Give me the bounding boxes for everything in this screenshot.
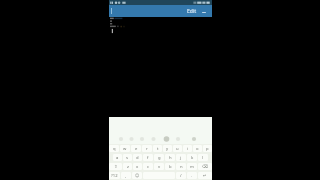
button[interactable]: x	[133, 163, 142, 170]
button[interactable]: s	[123, 154, 132, 161]
button[interactable]: r	[142, 145, 152, 152]
staticText: c	[147, 164, 150, 170]
staticText: n	[180, 164, 183, 170]
button[interactable]: v	[154, 163, 164, 170]
button[interactable]: d	[133, 154, 142, 161]
button[interactable]: k	[187, 154, 197, 161]
staticText: t	[157, 146, 159, 152]
button[interactable]: Undo	[109, 135, 123, 144]
button[interactable]: f	[143, 154, 153, 161]
staticText: d	[136, 155, 139, 161]
button[interactable]: ⇧	[109, 163, 122, 170]
button[interactable]: h	[165, 154, 175, 161]
staticText: s	[126, 155, 129, 161]
button[interactable]: q	[109, 145, 119, 152]
staticText: ⌫	[202, 164, 208, 169]
button[interactable]: Edit	[186, 6, 198, 17]
staticText: k	[191, 155, 194, 161]
button[interactable]: ?12	[109, 172, 120, 179]
staticText: o	[196, 146, 199, 152]
button[interactable]: t	[153, 145, 162, 152]
staticText: q	[113, 146, 116, 152]
button[interactable]: e	[131, 145, 141, 152]
staticText: /	[180, 173, 182, 179]
staticText: z	[127, 164, 129, 170]
staticText: j	[180, 155, 182, 161]
staticText: ⇧	[114, 164, 118, 169]
staticText: u	[176, 146, 179, 152]
staticText: ?12	[111, 173, 118, 179]
button[interactable]: Tab	[137, 135, 152, 144]
button[interactable]: ,	[121, 172, 131, 179]
staticText: b	[169, 164, 172, 170]
button[interactable]: y	[163, 145, 172, 152]
button[interactable]: n	[176, 163, 186, 170]
button[interactable]: More options	[201, 8, 207, 16]
button[interactable]: j	[176, 154, 186, 161]
button[interactable]: z	[123, 163, 132, 170]
staticText: f	[147, 155, 149, 161]
staticText: ,	[125, 173, 127, 179]
staticText: g	[158, 155, 161, 161]
staticText: .	[191, 173, 193, 179]
staticText: p	[206, 146, 209, 152]
staticText: w	[123, 146, 127, 152]
staticText: a	[116, 155, 119, 161]
staticText: Edit	[187, 8, 197, 15]
staticText: l	[202, 155, 204, 161]
staticText: m	[190, 164, 194, 170]
button[interactable]: .	[187, 172, 197, 179]
button[interactable]: c	[143, 163, 153, 170]
button[interactable]: o	[193, 145, 202, 152]
button[interactable]: ☺	[132, 172, 142, 179]
staticText: ☺	[135, 173, 140, 178]
button[interactable]: ⌫	[198, 163, 212, 170]
button[interactable]: l	[198, 154, 208, 161]
button[interactable]: /	[176, 172, 186, 179]
button[interactable]: p	[203, 145, 212, 152]
button[interactable]: a	[113, 154, 122, 161]
button[interactable]: Search	[152, 135, 167, 144]
staticText: r	[146, 146, 148, 152]
staticText: y	[166, 146, 169, 152]
staticText: ↵	[203, 173, 207, 178]
staticText: x	[136, 164, 139, 170]
button[interactable]: Redo	[123, 135, 137, 144]
button[interactable]: b	[165, 163, 175, 170]
staticText: h	[169, 155, 172, 161]
button[interactable]: m	[187, 163, 197, 170]
button[interactable]: u	[173, 145, 182, 152]
button[interactable]: g	[154, 154, 164, 161]
button[interactable]: ↵	[198, 172, 212, 179]
staticText: v	[158, 164, 161, 170]
button[interactable]: Settings	[167, 135, 182, 144]
button[interactable]: w	[120, 145, 130, 152]
button[interactable]: Clipboard	[182, 135, 197, 144]
staticText: e	[135, 146, 138, 152]
button[interactable]: i	[183, 145, 192, 152]
staticText: i	[187, 146, 189, 152]
